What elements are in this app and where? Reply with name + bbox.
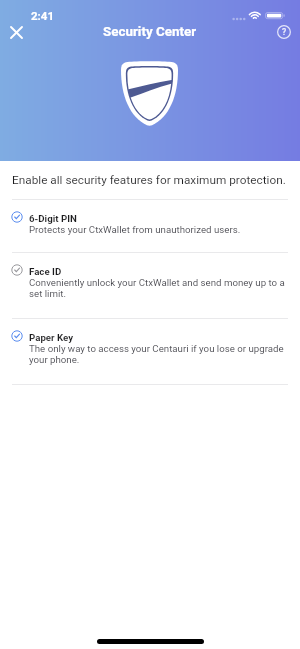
staticText: The only way to access your Centauri if … — [29, 343, 284, 365]
staticText: Conveniently unlock your CtxWallet and s… — [29, 277, 285, 299]
staticText: 2:41 — [31, 9, 55, 22]
staticText: Protects your CtxWallet from unauthorize… — [29, 224, 241, 235]
button[interactable]: 6-Digit PIN — [0, 199, 300, 252]
staticText: Security Center — [103, 24, 197, 40]
staticText: Face ID — [29, 266, 62, 277]
staticText: ? — [282, 27, 287, 37]
button[interactable]: Paper Key — [0, 318, 300, 384]
button[interactable]: Close — [3, 19, 29, 45]
button[interactable]: Help — [271, 19, 297, 45]
staticText: 6-Digit PIN — [29, 213, 77, 224]
button[interactable]: Face ID — [0, 252, 300, 318]
staticText: Paper Key — [29, 332, 74, 343]
staticText: Enable all security features for maximum… — [12, 173, 286, 187]
